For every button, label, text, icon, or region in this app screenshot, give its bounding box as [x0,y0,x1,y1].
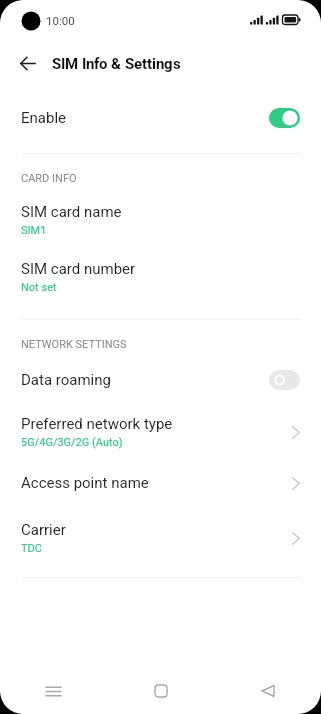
button[interactable]: Preferred network type [0,415,321,449]
staticText: Carrier [21,521,66,539]
staticText: TDC [21,542,42,555]
button[interactable]: Home [107,668,214,714]
staticText: Preferred network type [21,415,173,433]
button[interactable]: Access point name [0,474,321,492]
button[interactable]: SIM card name [0,203,321,237]
button[interactable]: Data roaming [0,370,321,390]
button[interactable]: Back [214,668,321,714]
staticText: NETWORK SETTINGS [21,338,127,351]
staticText: Enable [21,109,66,127]
staticText: SIM card name [21,203,122,221]
staticText: SIM card number [21,260,136,278]
button[interactable]: Back [14,49,42,77]
staticText: Access point name [21,474,149,492]
button[interactable]: Carrier [0,521,321,555]
staticText: Data roaming [21,371,111,389]
staticText: 10:00 [46,14,75,27]
staticText: Not set [21,281,57,294]
button[interactable]: SIM card number [0,260,321,294]
button[interactable]: Recent apps [0,668,107,714]
staticText: SIM1 [21,224,47,237]
button[interactable]: Enable [0,99,321,137]
staticText: 5G/4G/3G/2G (Auto) [21,436,123,449]
staticText: CARD INFO [21,172,77,185]
